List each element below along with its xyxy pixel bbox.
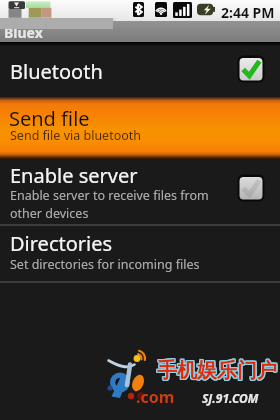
- staticText: 2:44 PM: [221, 3, 275, 22]
- staticText: 手机娱乐门户: [156, 359, 276, 384]
- staticText: Enable server to receive files from othe…: [10, 187, 210, 221]
- staticText: Send file via bluetooth: [10, 127, 142, 144]
- staticText: Directories: [10, 230, 113, 257]
- button[interactable]: Bluetooth: [0, 46, 280, 98]
- staticText: 手机娱乐门户: [157, 357, 277, 382]
- staticText: 手机娱乐门户: [158, 357, 278, 382]
- staticText: Enable server: [10, 162, 138, 189]
- staticText: SJ.91.COM: [202, 390, 259, 406]
- button[interactable]: Directories: [0, 226, 280, 282]
- button[interactable]: Enable server: [0, 159, 280, 225]
- button[interactable]: Send file: [0, 97, 280, 159]
- button[interactable]: Enable server off: [237, 174, 265, 202]
- staticText: Set directories for incoming files: [10, 256, 200, 273]
- staticText: 手机娱乐门户: [158, 358, 278, 383]
- staticText: Bluetooth: [10, 58, 103, 85]
- staticText: 手机娱乐门户: [156, 357, 276, 382]
- staticText: 手机娱乐门户: [157, 358, 277, 383]
- button[interactable]: Bluetooth on: [237, 55, 265, 83]
- staticText: .com: [136, 386, 175, 408]
- staticText: 手机娱乐门户: [158, 359, 278, 384]
- staticText: Send file: [9, 105, 90, 132]
- staticText: 手机娱乐门户: [157, 359, 277, 384]
- staticText: 手机娱乐门户: [156, 358, 276, 383]
- staticText: Bluex: [4, 23, 43, 42]
